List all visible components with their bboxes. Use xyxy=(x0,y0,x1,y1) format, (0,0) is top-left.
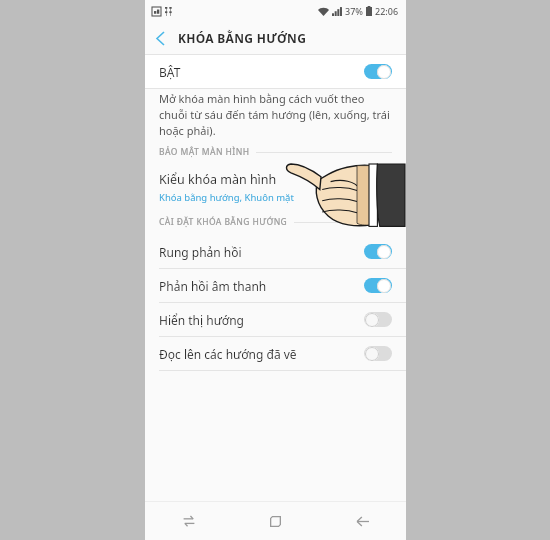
button[interactable]: Home xyxy=(232,502,319,540)
staticText: Kiểu khóa màn hình xyxy=(159,171,277,188)
button[interactable]: Hiển thị hướng xyxy=(145,303,406,336)
staticText: Đọc lên các hướng đã vẽ xyxy=(159,346,297,362)
button[interactable]: Kiểu khóa màn hình xyxy=(145,165,406,209)
staticText: CÀI ĐẶT KHÓA BẰNG HƯỚNG xyxy=(159,216,288,228)
button[interactable]: Recents xyxy=(145,502,232,540)
button[interactable]: Back xyxy=(145,23,175,53)
staticText: Rung phản hồi xyxy=(159,244,242,260)
staticText: Khóa bằng hướng, Khuôn mặt xyxy=(159,191,294,204)
button[interactable]: Back xyxy=(319,502,406,540)
button[interactable]: Đọc lên các hướng đã vẽ xyxy=(145,337,406,370)
staticText: KHÓA BẰNG HƯỚNG xyxy=(178,30,307,46)
button[interactable]: Rung phản hồi xyxy=(145,235,406,268)
button[interactable]: BẬT xyxy=(145,55,406,88)
button[interactable]: Phản hồi âm thanh xyxy=(145,269,406,302)
staticText: BẬT xyxy=(159,64,181,80)
staticText: 37% xyxy=(345,5,363,17)
staticText: Mở khóa màn hình bằng cách vuốt theo chu… xyxy=(159,91,392,138)
staticText: 22:06 xyxy=(375,5,399,17)
staticText: Hiển thị hướng xyxy=(159,312,244,328)
staticText: Phản hồi âm thanh xyxy=(159,278,267,294)
staticText: BẢO MẬT MÀN HÌNH xyxy=(159,146,250,158)
